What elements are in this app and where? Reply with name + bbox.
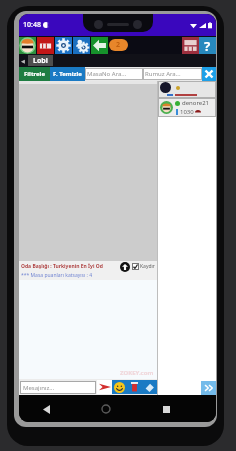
button[interactable]: Gallery [182,37,199,54]
staticText: ? [204,37,211,54]
staticText: ZOKEY.com [120,369,154,377]
button[interactable]: Recents [155,398,177,420]
button[interactable]: Back [91,37,108,54]
staticText: F. Temizle [53,70,82,78]
button[interactable]: Filtrele [19,67,50,81]
button[interactable]: Settings [55,37,72,54]
button[interactable]: denore21 [160,98,216,117]
button[interactable]: News [37,37,54,54]
staticText: 1030 [180,108,194,116]
staticText: Filtrele [24,70,45,78]
staticText: *** Masa puanları katsayısı : 4 [21,272,93,279]
button[interactable]: Coins [109,39,128,51]
button[interactable]: Home [95,398,117,420]
button[interactable]: Back [35,398,57,420]
button[interactable]: Attach [142,380,157,394]
button[interactable]: Close [202,67,216,81]
staticText: ◀ [21,58,25,64]
staticText: 10:48 [23,20,41,30]
button[interactable]: F. Temizle [50,67,85,81]
button[interactable]: Mesajınız... [20,381,96,394]
button[interactable]: Account settings [73,37,90,54]
staticText: 2 [116,40,121,50]
button[interactable]: Rumuz Ara... [143,68,202,80]
staticText: Mesajınız... [23,384,55,392]
button[interactable]: Expand [201,381,216,395]
button[interactable]: Gift [127,380,142,394]
button[interactable] [158,81,216,98]
button[interactable]: MasaNo Ara... [85,68,143,80]
button[interactable]: Lobi [33,55,48,66]
button[interactable]: Send [97,380,112,394]
staticText: Rumuz Ara... [145,70,181,78]
staticText: denore21 [182,99,210,107]
staticText: Kaydır [140,263,155,270]
staticText: Oda Başlığı : Turkiyenin En İyi Od [21,263,120,270]
button[interactable]: Profile [19,37,36,54]
button[interactable]: Scroll up [120,262,130,272]
staticText: MasaNo Ara... [87,70,127,78]
staticText: Lobi [33,56,48,66]
button[interactable]: Emoji [112,380,127,394]
button[interactable]: Help [199,37,216,54]
